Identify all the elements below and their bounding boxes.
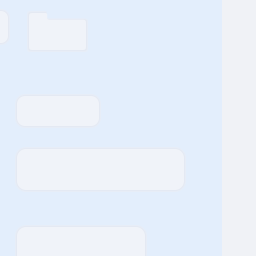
- button[interactable]: Folder: [29, 13, 86, 50]
